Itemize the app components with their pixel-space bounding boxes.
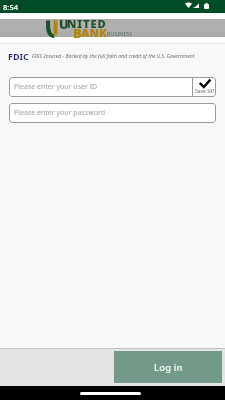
button[interactable]: Log in [114, 351, 222, 383]
staticText: FDIC [8, 50, 29, 60]
staticText: FDIC-Insured - Backed by the full faith … [32, 53, 195, 60]
staticText: Log in [154, 361, 183, 374]
staticText: Please enter your password [14, 108, 106, 118]
button[interactable]: Save Id [193, 77, 216, 97]
staticText: BUSINESS [107, 30, 133, 37]
button[interactable]: Please enter your password [9, 103, 216, 123]
staticText: NITED [67, 16, 107, 31]
staticText: Please enter your user ID [14, 82, 98, 92]
staticText: 8:54 [3, 2, 19, 12]
staticText: U [59, 15, 69, 32]
button[interactable]: Please enter your user ID [9, 77, 192, 97]
staticText: B [73, 24, 82, 41]
staticText: Save Id? [195, 88, 215, 95]
staticText: ANK [81, 25, 108, 40]
